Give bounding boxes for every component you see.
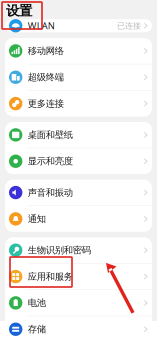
button[interactable]: 超级终端 bbox=[5, 64, 152, 90]
button[interactable]: 移动网络 bbox=[5, 38, 152, 64]
staticText: 更多连接 bbox=[28, 98, 64, 109]
staticText: 通知 bbox=[28, 213, 46, 225]
button[interactable]: 电池 bbox=[5, 290, 152, 316]
button[interactable]: 声音和振动 bbox=[5, 180, 152, 205]
button[interactable]: 生物识别和密码 bbox=[5, 237, 152, 263]
staticText: 显示和亮度 bbox=[28, 155, 73, 167]
staticText: 已连接 bbox=[117, 21, 141, 31]
button[interactable]: 显示和亮度 bbox=[5, 148, 152, 174]
staticText: 电池 bbox=[28, 297, 46, 309]
button[interactable]: 更多连接 bbox=[5, 91, 152, 116]
staticText: 移动网络 bbox=[28, 45, 64, 57]
staticText: 生物识别和密码 bbox=[28, 244, 91, 256]
button[interactable]: 存储 bbox=[5, 316, 152, 342]
button[interactable]: 桌面和壁纸 bbox=[5, 122, 152, 148]
staticText: 存储 bbox=[28, 323, 46, 335]
button[interactable]: WLAN bbox=[5, 13, 152, 39]
staticText: WLAN bbox=[28, 20, 55, 32]
button[interactable]: 通知 bbox=[5, 206, 152, 232]
staticText: 设置 bbox=[6, 3, 32, 19]
button[interactable]: 应用和服务 bbox=[5, 264, 152, 289]
staticText: 声音和振动 bbox=[28, 187, 73, 198]
staticText: 超级终端 bbox=[28, 71, 64, 83]
staticText: 应用和服务 bbox=[28, 271, 73, 282]
staticText: 桌面和壁纸 bbox=[28, 129, 73, 141]
